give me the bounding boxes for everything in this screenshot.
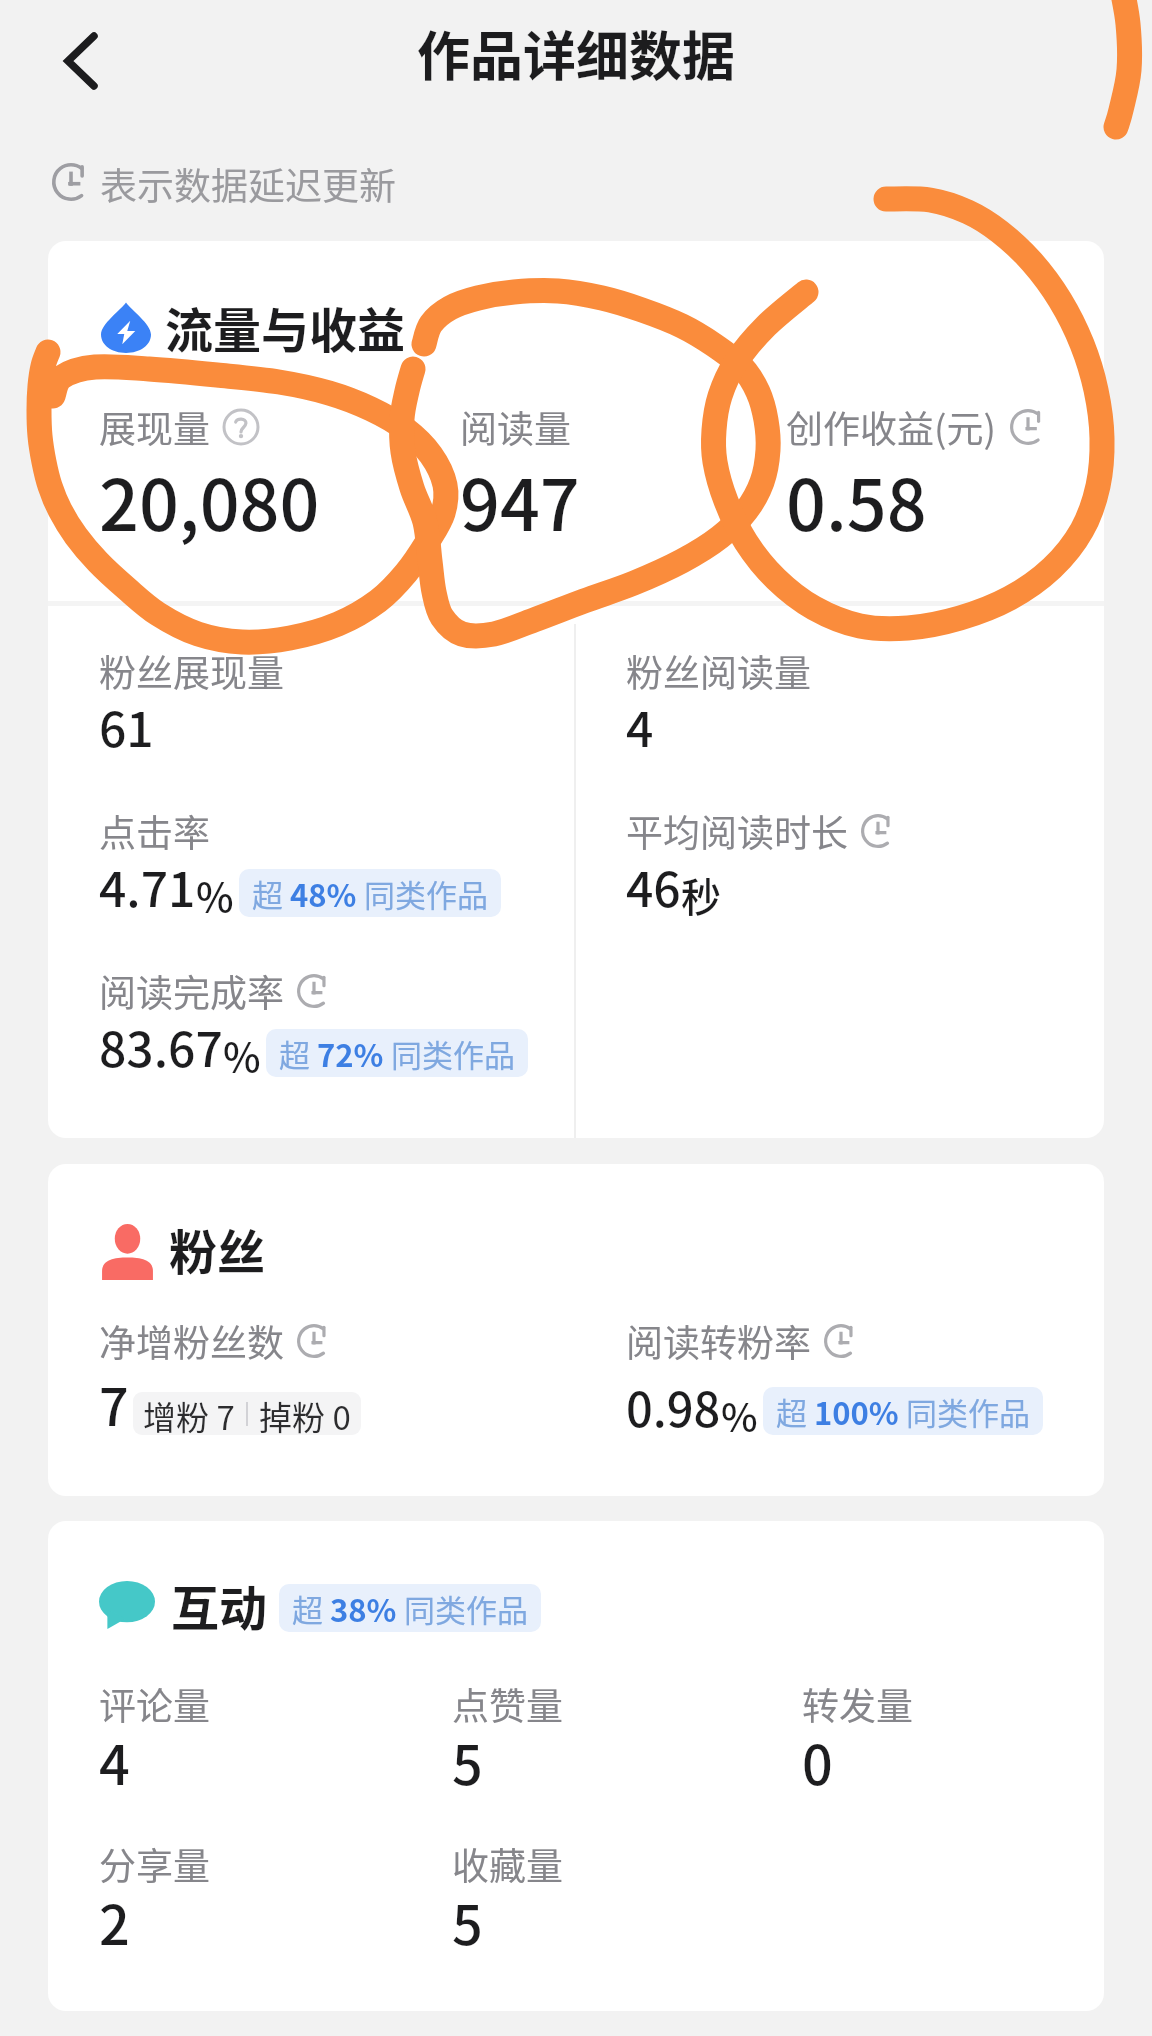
staticText: 同类作品 — [384, 1031, 515, 1076]
staticText: 4.71 — [99, 851, 196, 921]
staticText: 粉丝展现量 — [99, 644, 284, 698]
staticText: % — [721, 1387, 758, 1443]
staticText: 点赞量 — [452, 1677, 563, 1731]
staticText: 61 — [99, 691, 154, 761]
staticText: 创作收益(元) — [786, 400, 997, 454]
staticText: 947 — [460, 450, 580, 551]
button[interactable]: 流量与收益 — [48, 241, 1104, 1138]
staticText: 收藏量 — [452, 1837, 563, 1891]
staticText: 阅读完成率 — [99, 964, 284, 1018]
staticText: 分享量 — [99, 1837, 210, 1891]
staticText: 作品详细数据 — [417, 15, 735, 92]
staticText: 掉粉 0 — [259, 1392, 351, 1435]
staticText: 0.98 — [626, 1372, 721, 1440]
staticText: 38% — [330, 1586, 397, 1631]
staticText: 83.67 — [99, 1011, 223, 1081]
staticText: 粉丝阅读量 — [626, 644, 811, 698]
staticText: 5 — [452, 1722, 483, 1800]
staticText: 超 — [252, 871, 290, 916]
staticText: 46 — [626, 851, 681, 921]
staticText: 同类作品 — [357, 871, 488, 916]
staticText: 阅读量 — [460, 400, 571, 454]
staticText: 阅读转粉率 — [626, 1314, 811, 1368]
staticText: 净增粉丝数 — [99, 1314, 284, 1368]
staticText: 4 — [99, 1722, 130, 1800]
staticText: 48% — [290, 871, 357, 916]
staticText: 展现量 — [99, 400, 210, 454]
staticText: 7 — [99, 1366, 129, 1441]
staticText: 超 — [279, 1031, 317, 1076]
staticText: 粉丝 — [169, 1214, 266, 1284]
staticText: 点击率 — [99, 804, 210, 858]
staticText: % — [196, 866, 234, 924]
staticText: % — [223, 1026, 261, 1084]
staticText: 表示数据延迟更新 — [100, 157, 396, 211]
staticText: 超 — [776, 1389, 814, 1434]
staticText: 超 — [292, 1586, 330, 1631]
staticText: 100% — [814, 1389, 899, 1434]
staticText: 转发量 — [802, 1677, 913, 1731]
staticText: 5 — [452, 1882, 483, 1960]
staticText: 平均阅读时长 — [626, 804, 848, 858]
staticText: 0 — [802, 1722, 833, 1800]
staticText: 互动 — [171, 1570, 268, 1640]
staticText: 72% — [317, 1031, 384, 1076]
button[interactable]: 说明 — [222, 408, 260, 446]
staticText: 同类作品 — [397, 1586, 528, 1631]
staticText: 流量与收益 — [165, 292, 406, 362]
button[interactable]: Back — [33, 14, 103, 106]
staticText: 秒 — [681, 866, 721, 924]
staticText: 0.58 — [786, 450, 927, 551]
staticText: 4 — [626, 691, 654, 761]
staticText: 20,080 — [99, 450, 320, 551]
staticText: 增粉 7 — [143, 1392, 235, 1435]
staticText: 同类作品 — [899, 1389, 1030, 1434]
button[interactable]: 互动 — [48, 1521, 1104, 2011]
staticText: 2 — [99, 1882, 130, 1960]
staticText: 评论量 — [99, 1677, 210, 1731]
button[interactable]: 粉丝 — [48, 1164, 1104, 1496]
